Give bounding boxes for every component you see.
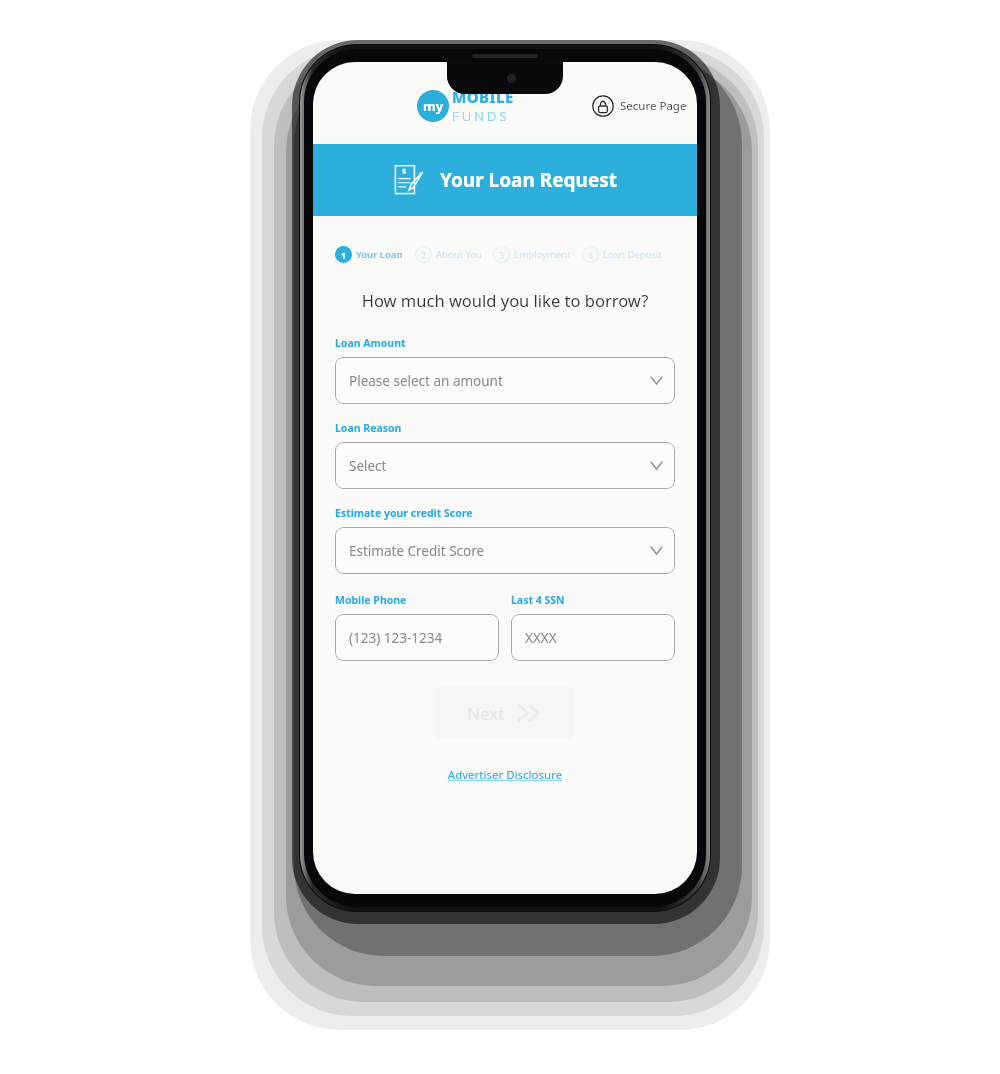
staticText: XXXX: [525, 629, 557, 647]
staticText: Loan Deposit: [603, 248, 662, 261]
staticText: Select: [349, 457, 387, 475]
staticText: MOBILE: [452, 87, 514, 107]
staticText: Last 4 SSN: [511, 593, 565, 607]
staticText: Loan Amount: [335, 336, 406, 350]
staticText: Estimate your credit Score: [335, 506, 473, 520]
other: Secure: [592, 95, 614, 117]
staticText: Estimate Credit Score: [349, 542, 485, 560]
staticText: 3: [499, 249, 505, 261]
staticText: Mobile Phone: [335, 593, 407, 607]
staticText: Secure Page: [620, 98, 687, 114]
staticText: FUNDS: [452, 107, 510, 125]
button[interactable]: 3: [493, 246, 571, 263]
staticText: About You: [436, 248, 482, 261]
staticText: 2: [421, 249, 427, 261]
button[interactable]: Please select an amount: [335, 357, 675, 404]
staticText: Employment: [514, 248, 571, 261]
staticText: 1: [341, 249, 347, 261]
button[interactable]: Select: [335, 442, 675, 489]
button[interactable]: 4: [582, 246, 662, 263]
button[interactable]: Secure: [592, 95, 687, 117]
staticText: Loan Reason: [335, 421, 402, 435]
button[interactable]: (123) 123-1234: [335, 614, 499, 661]
button[interactable]: 1: [335, 246, 403, 263]
button[interactable]: Advertiser Disclosure: [313, 767, 697, 783]
staticText: Next: [467, 702, 505, 725]
staticText: Please select an amount: [349, 372, 503, 390]
staticText: How much would you like to borrow?: [313, 289, 697, 311]
button[interactable]: 2: [415, 246, 482, 263]
staticText: Your Loan: [356, 248, 403, 261]
button[interactable]: Estimate Credit Score: [335, 527, 675, 574]
staticText: my: [423, 97, 444, 115]
staticText: (123) 123-1234: [349, 629, 443, 647]
staticText: Your Loan Request: [440, 167, 618, 193]
button[interactable]: XXXX: [511, 614, 675, 661]
staticText: 4: [588, 249, 594, 261]
